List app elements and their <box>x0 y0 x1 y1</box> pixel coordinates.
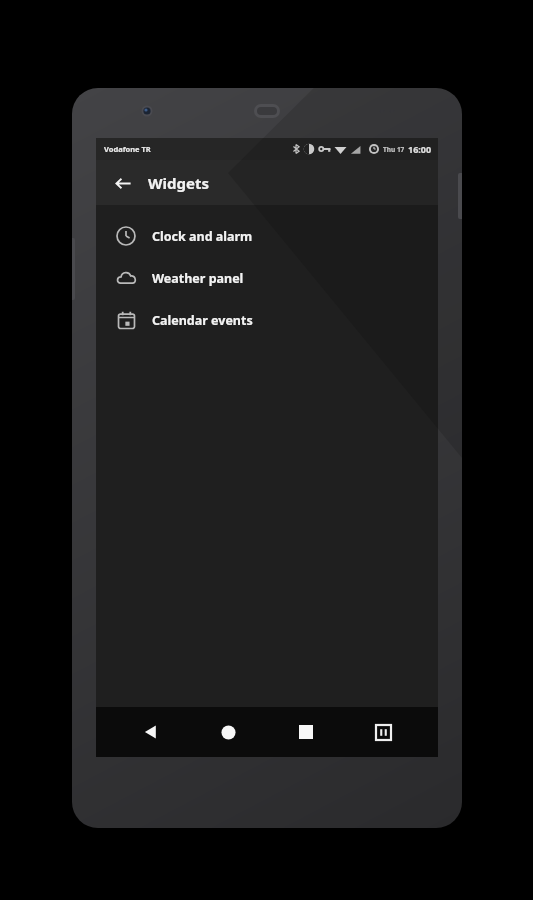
button[interactable]: Home <box>206 710 250 754</box>
button[interactable]: Recent apps <box>284 710 328 754</box>
button[interactable]: Split screen <box>361 710 405 754</box>
staticText: Widgets <box>148 173 209 193</box>
button[interactable]: Calendar events <box>96 299 438 341</box>
button[interactable]: Back <box>106 166 140 200</box>
staticText: 16:00 <box>408 143 432 155</box>
staticText: Thu 17 <box>383 145 405 154</box>
button[interactable]: Weather panel <box>96 257 438 299</box>
staticText: Calendar events <box>152 312 253 329</box>
button[interactable]: Clock and alarm <box>96 215 438 257</box>
button[interactable]: Back <box>129 710 173 754</box>
staticText: Clock and alarm <box>152 228 253 245</box>
staticText: Vodafone TR <box>104 144 151 154</box>
staticText: Weather panel <box>152 270 244 287</box>
